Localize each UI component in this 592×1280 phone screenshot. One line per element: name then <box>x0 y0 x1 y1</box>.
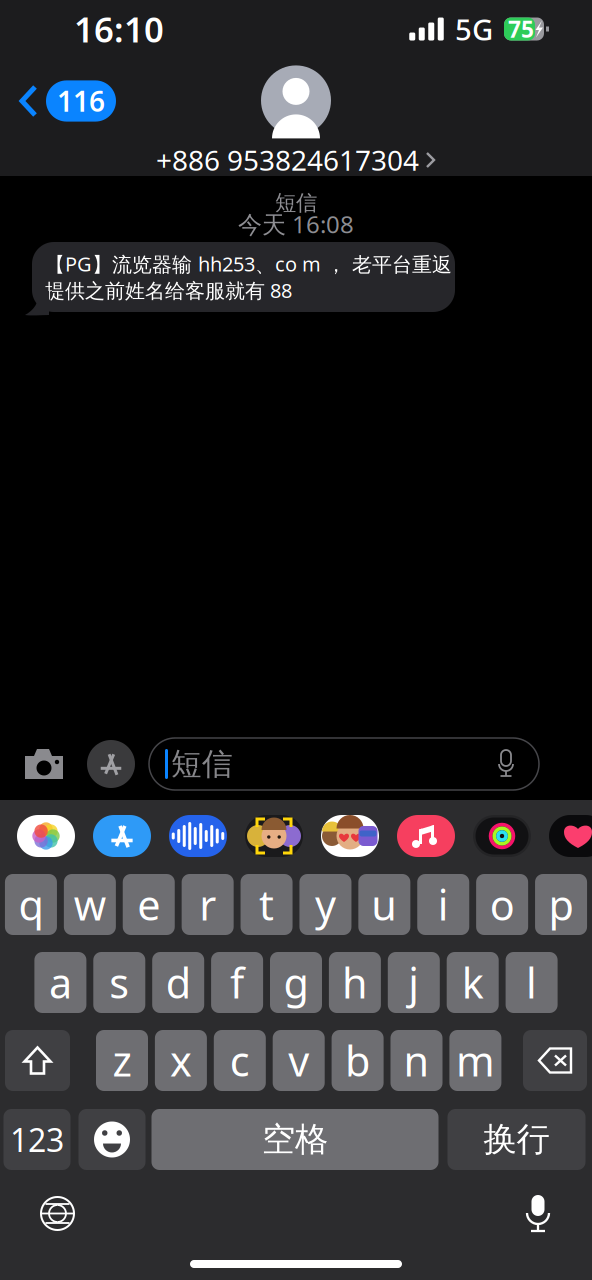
button[interactable]: Photos <box>17 815 75 857</box>
staticText: +886 953824617304 <box>156 141 419 179</box>
staticText: l <box>526 955 537 1010</box>
staticText: 16:10 <box>74 6 164 52</box>
staticText: 今天 16:08 <box>238 208 354 240</box>
button[interactable]: y <box>299 874 351 935</box>
staticText: f <box>230 955 244 1010</box>
staticText: m <box>456 1033 495 1088</box>
staticText: y <box>315 877 336 932</box>
staticText: 75 <box>508 14 534 44</box>
button[interactable]: Stickers <box>321 815 379 857</box>
button[interactable]: f <box>211 952 263 1013</box>
staticText: n <box>403 1033 429 1088</box>
staticText: k <box>462 955 484 1010</box>
staticText: v <box>288 1033 309 1088</box>
button[interactable]: 123 <box>3 1109 70 1170</box>
button[interactable]: Delete <box>523 1030 587 1091</box>
button[interactable]: n <box>390 1030 442 1091</box>
button[interactable]: m <box>449 1030 501 1091</box>
button[interactable]: j <box>388 952 440 1013</box>
button[interactable]: w <box>64 874 116 935</box>
button[interactable]: Switch keyboard <box>0 1175 100 1252</box>
button[interactable]: h <box>329 952 381 1013</box>
staticText: e <box>137 877 160 932</box>
staticText: t <box>259 877 274 932</box>
staticText: r <box>199 877 216 932</box>
button[interactable]: Music <box>397 815 455 857</box>
staticText: z <box>112 1033 131 1088</box>
button[interactable]: b <box>332 1030 384 1091</box>
staticText: 短信 <box>275 190 317 216</box>
staticText: d <box>166 955 191 1010</box>
button[interactable]: 空格 <box>151 1109 438 1170</box>
button[interactable]: v <box>273 1030 325 1091</box>
button[interactable]: e <box>123 874 175 935</box>
button[interactable]: x <box>155 1030 207 1091</box>
staticText: h <box>342 955 368 1010</box>
button[interactable]: k <box>447 952 499 1013</box>
staticText: w <box>74 877 106 932</box>
staticText: i <box>438 877 449 932</box>
button[interactable]: c <box>214 1030 266 1091</box>
staticText: j <box>408 955 419 1010</box>
button[interactable]: a <box>34 952 86 1013</box>
staticText: o <box>490 877 515 932</box>
staticText: b <box>345 1033 370 1088</box>
button[interactable]: q <box>5 874 57 935</box>
staticText: 【PG】流览器输 hh253、co m ， 老平台重返 提供之前姓名给客服就有 … <box>45 250 452 304</box>
staticText: 换行 <box>483 1119 549 1160</box>
staticText: 短信 <box>171 745 233 783</box>
button[interactable]: i <box>417 874 469 935</box>
button[interactable]: r <box>182 874 234 935</box>
staticText: c <box>230 1033 250 1088</box>
staticText: 空格 <box>262 1119 328 1160</box>
staticText: g <box>283 955 308 1010</box>
button[interactable]: Health <box>549 815 592 857</box>
button[interactable]: Emoji <box>78 1109 145 1170</box>
staticText: 5G <box>455 9 493 48</box>
button[interactable]: t <box>240 874 292 935</box>
staticText: 116 <box>57 82 105 120</box>
button[interactable]: 短信 <box>141 738 539 790</box>
button[interactable]: z <box>96 1030 148 1091</box>
button[interactable]: s <box>93 952 145 1013</box>
button[interactable]: +886 953824617304 <box>116 55 476 179</box>
button[interactable]: Camera <box>0 729 81 799</box>
button[interactable]: App Store <box>93 815 151 857</box>
button[interactable]: g <box>270 952 322 1013</box>
staticText: p <box>548 877 573 932</box>
staticText: x <box>170 1033 192 1088</box>
button[interactable]: Dictate <box>499 1175 592 1252</box>
button[interactable]: u <box>358 874 410 935</box>
button[interactable]: Audio message <box>169 815 227 857</box>
staticText: s <box>109 955 129 1010</box>
button[interactable]: o <box>476 874 528 935</box>
button[interactable]: Shift <box>5 1030 70 1091</box>
button[interactable]: App Store <box>81 730 141 798</box>
button[interactable]: Fitness <box>473 815 531 857</box>
button[interactable]: p <box>535 874 587 935</box>
button[interactable]: l <box>506 952 558 1013</box>
button[interactable]: Memoji <box>245 815 303 857</box>
button[interactable]: d <box>152 952 204 1013</box>
staticText: 123 <box>10 1118 64 1161</box>
staticText: a <box>49 955 72 1010</box>
button[interactable]: 换行 <box>447 1109 585 1170</box>
staticText: u <box>371 877 397 932</box>
button[interactable]: 116 <box>0 70 128 132</box>
staticText: q <box>18 877 43 932</box>
